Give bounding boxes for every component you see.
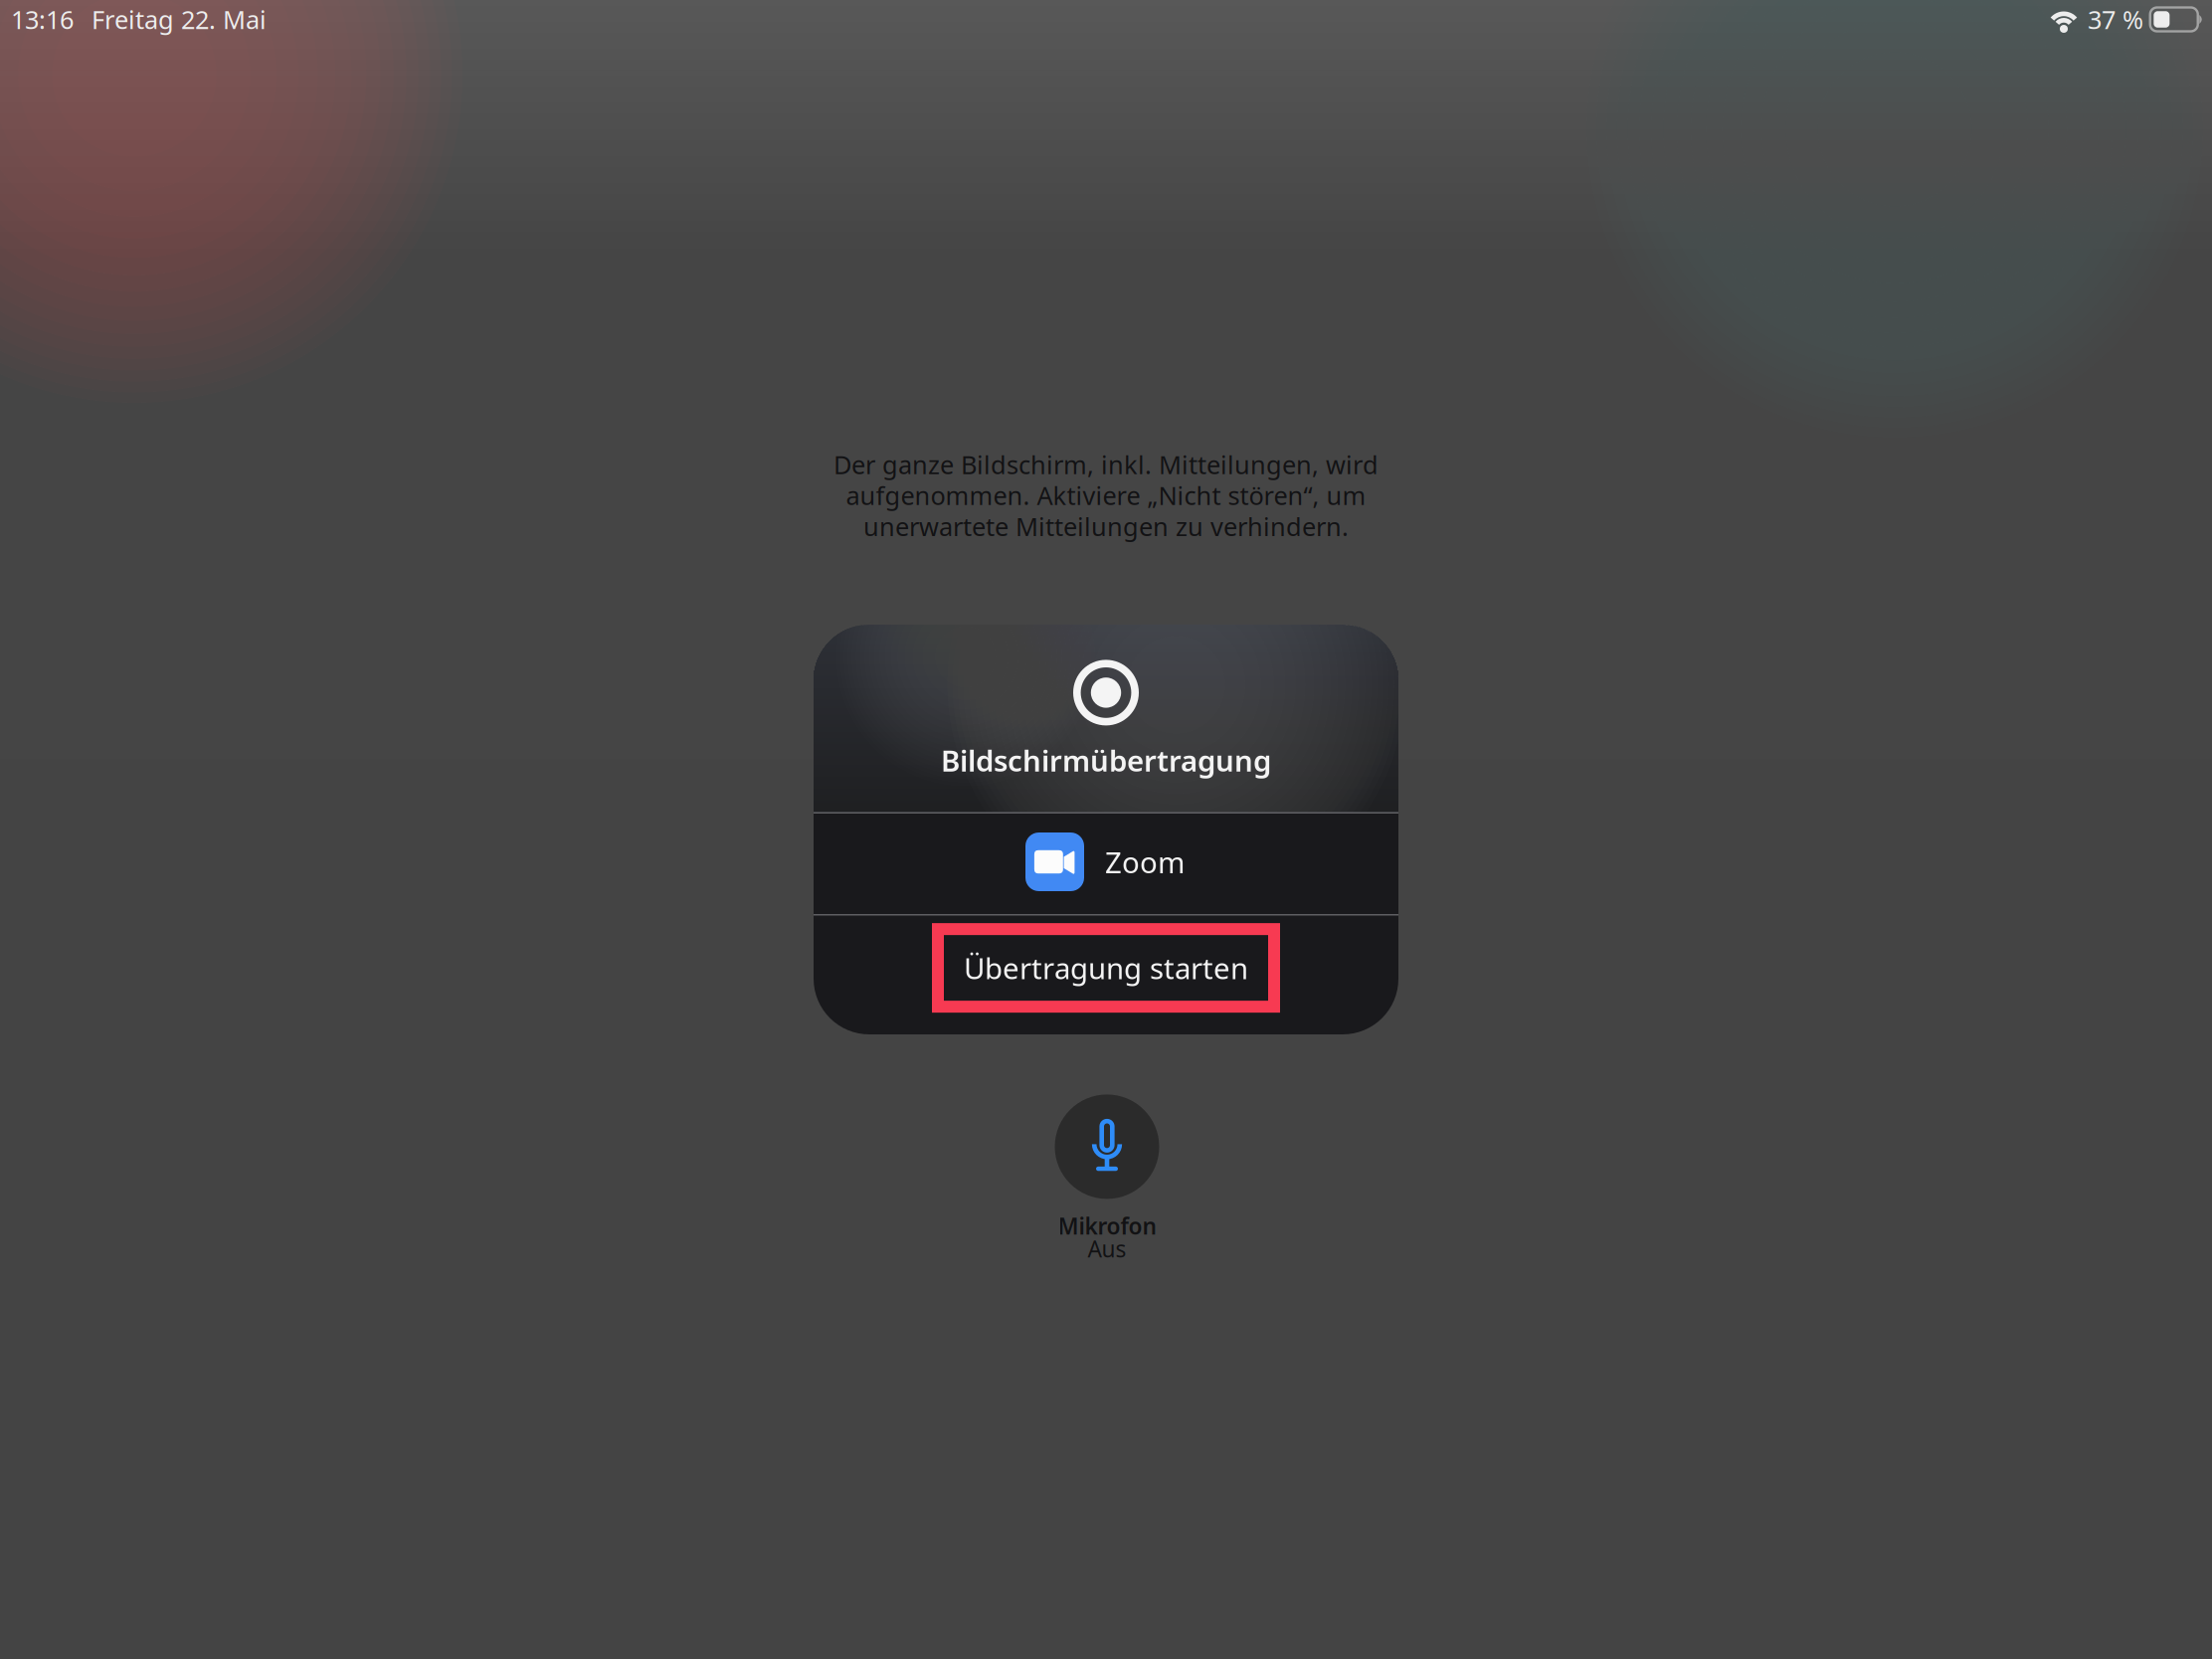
staticText: Übertragung starten — [964, 948, 1248, 987]
staticText: Freitag 22. Mai — [92, 3, 267, 36]
button[interactable]: Zoom — [814, 814, 1398, 914]
staticText: 37 % — [2088, 3, 2143, 36]
staticText: unerwartete Mitteilungen zu verhindern. — [863, 510, 1349, 543]
staticText: 13:16 — [11, 3, 74, 36]
staticText: Der ganze Bildschirm, inkl. Mitteilungen… — [833, 448, 1379, 481]
button[interactable]: Übertragung starten — [814, 916, 1398, 1036]
staticText: aufgenommen. Aktiviere „Nicht stören“, u… — [846, 479, 1366, 512]
staticText: Bildschirmübertragung — [941, 741, 1271, 780]
staticText: Mikrofon — [1058, 1211, 1156, 1241]
button[interactable]: Mikrofon — [978, 1094, 1236, 1271]
staticText: Zoom — [1105, 842, 1185, 881]
staticText: Aus — [1088, 1234, 1126, 1264]
